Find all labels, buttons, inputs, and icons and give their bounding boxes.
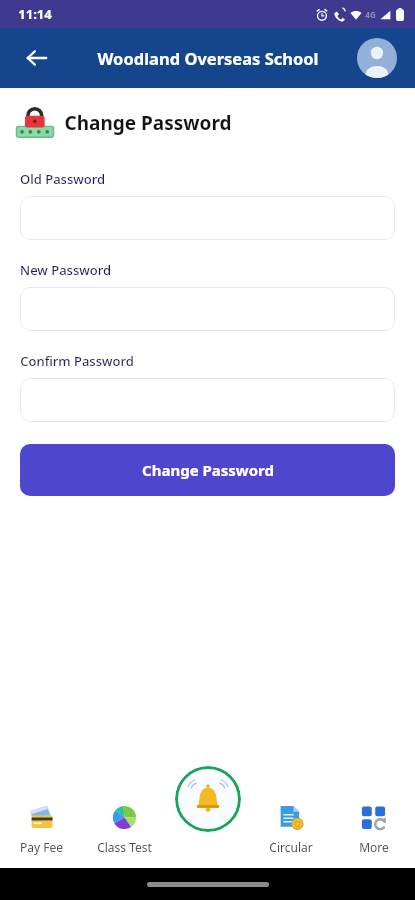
staticText: More [359, 839, 389, 855]
staticText: Pay Fee [20, 839, 63, 855]
staticText: Class Test [97, 839, 152, 855]
button[interactable]: Back [16, 37, 58, 79]
staticText: Woodland Overseas School [97, 47, 319, 69]
staticText: Old Password [20, 170, 105, 188]
staticText: Change Password [142, 460, 274, 480]
staticText: New Password [20, 261, 111, 279]
button[interactable]: Pay Fee [0, 790, 83, 868]
staticText: Confirm Password [20, 352, 134, 370]
staticText: Change Password [64, 110, 232, 136]
button[interactable] [20, 287, 395, 331]
button[interactable]: Notifications [175, 766, 241, 832]
button[interactable] [20, 196, 395, 240]
staticText: 4G [365, 9, 376, 20]
button[interactable]: Circular [249, 790, 332, 868]
button[interactable]: Profile [357, 38, 397, 78]
button[interactable]: More [332, 790, 415, 868]
button[interactable]: Change Password [20, 444, 395, 496]
staticText: Circular [269, 839, 313, 855]
button[interactable] [20, 378, 395, 422]
staticText: 11:14 [18, 5, 52, 23]
button[interactable]: Class Test [83, 790, 166, 868]
